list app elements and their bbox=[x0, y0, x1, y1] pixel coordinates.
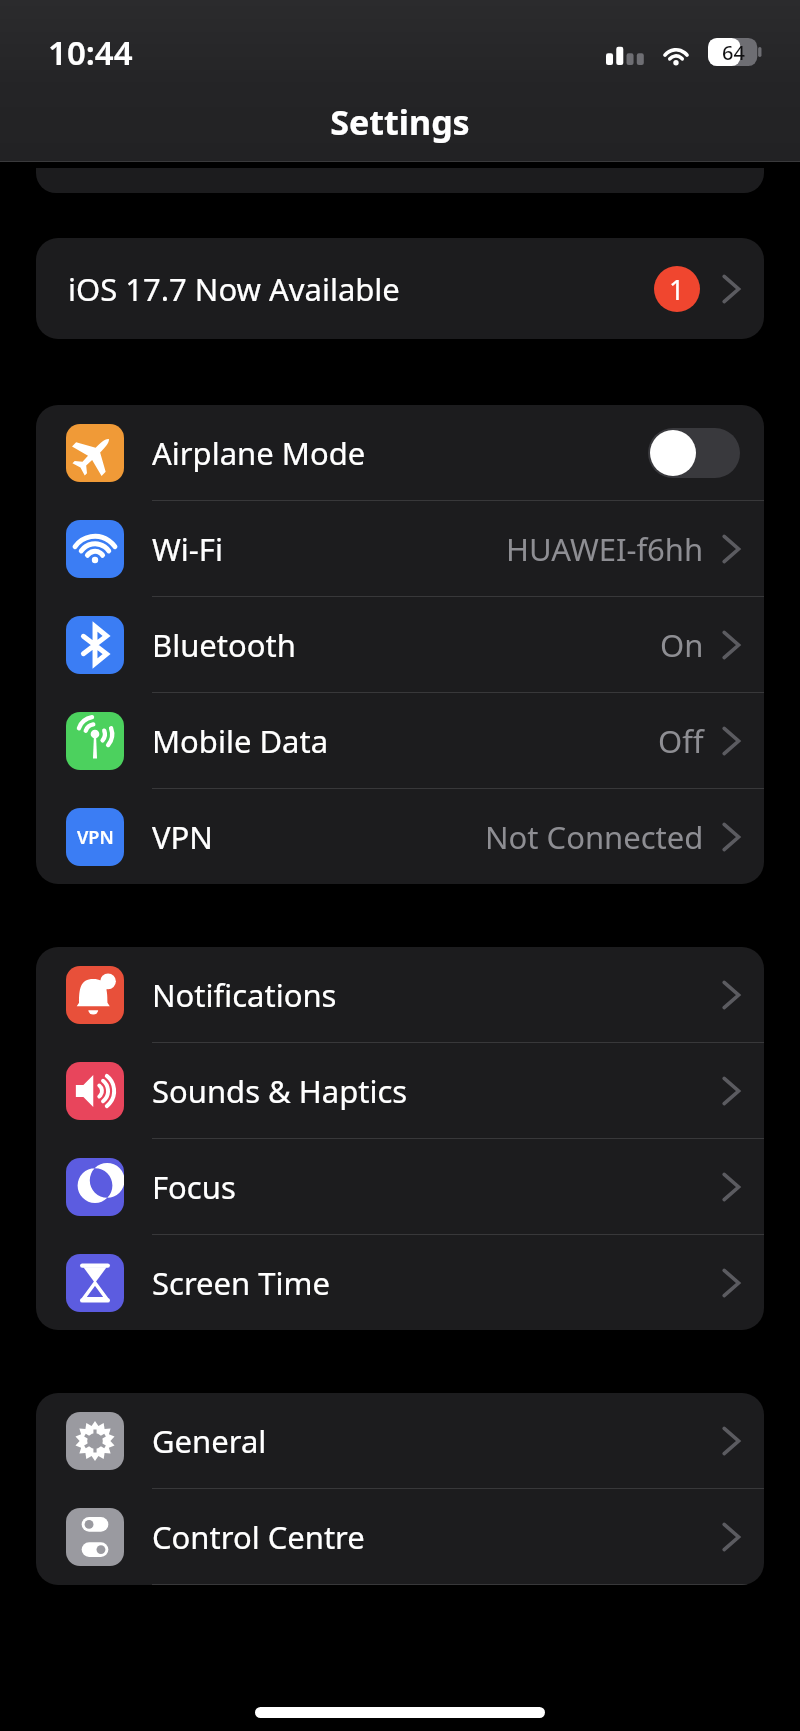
staticText: Not Connected bbox=[485, 816, 704, 858]
staticText: 64 bbox=[722, 39, 745, 66]
staticText: VPN bbox=[77, 825, 114, 850]
staticText: Airplane Mode bbox=[152, 432, 648, 474]
staticText: 1 bbox=[669, 271, 685, 308]
button[interactable]: Control Centre bbox=[36, 1489, 764, 1585]
staticText: Sounds & Haptics bbox=[152, 1070, 722, 1112]
staticText: iOS 17.7 Now Available bbox=[68, 268, 654, 310]
staticText: HUAWEI-f6hh bbox=[506, 528, 704, 570]
staticText: Control Centre bbox=[152, 1516, 722, 1558]
button[interactable]: Airplane Mode bbox=[36, 405, 764, 501]
button[interactable]: Bluetooth bbox=[36, 597, 764, 693]
staticText: Bluetooth bbox=[152, 624, 660, 666]
staticText: 10:44 bbox=[48, 30, 133, 75]
button[interactable]: iOS 17.7 Now Available bbox=[36, 238, 764, 339]
staticText: General bbox=[152, 1420, 722, 1462]
staticText: Mobile Data bbox=[152, 720, 658, 762]
staticText: On bbox=[660, 624, 704, 666]
staticText: Settings bbox=[330, 99, 470, 145]
button[interactable]: Airplane Mode toggle bbox=[648, 428, 740, 478]
button[interactable]: Notifications bbox=[36, 947, 764, 1043]
button[interactable]: Wi-Fi bbox=[36, 501, 764, 597]
button[interactable]: General bbox=[36, 1393, 764, 1489]
staticText: VPN bbox=[152, 816, 485, 858]
staticText: Off bbox=[658, 720, 704, 762]
button[interactable]: VPN bbox=[36, 789, 764, 884]
staticText: Screen Time bbox=[152, 1262, 722, 1304]
button[interactable]: Sounds & Haptics bbox=[36, 1043, 764, 1139]
button[interactable]: Focus bbox=[36, 1139, 764, 1235]
staticText: Wi-Fi bbox=[152, 528, 506, 570]
staticText: Notifications bbox=[152, 974, 722, 1016]
button[interactable]: Screen Time bbox=[36, 1235, 764, 1330]
button[interactable]: Mobile Data bbox=[36, 693, 764, 789]
staticText: Focus bbox=[152, 1166, 722, 1208]
